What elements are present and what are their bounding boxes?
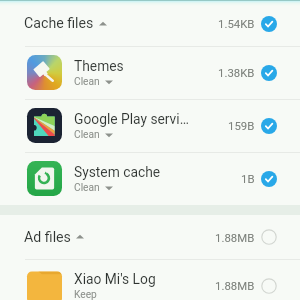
staticText: 1.54KB xyxy=(218,17,255,30)
staticText: System cache xyxy=(74,164,161,180)
staticText: Cache files xyxy=(24,15,94,32)
staticText: Clean xyxy=(74,182,100,194)
button[interactable]: Selected xyxy=(261,16,277,32)
button[interactable]: Ad files xyxy=(0,215,300,259)
staticText: Ad files xyxy=(24,229,71,246)
button[interactable]: System cache xyxy=(0,152,300,205)
staticText: Google Play servi… xyxy=(74,111,189,127)
button[interactable]: Selected xyxy=(261,118,277,134)
staticText: 1.88MB xyxy=(215,279,255,292)
staticText: Clean xyxy=(74,129,100,141)
button[interactable]: Cache files xyxy=(0,1,300,46)
staticText: Clean xyxy=(74,76,100,88)
button[interactable]: Not selected xyxy=(261,229,277,245)
button[interactable]: Xiao Mi's Log xyxy=(0,259,300,300)
staticText: Themes xyxy=(74,58,124,74)
staticText: 1B xyxy=(241,172,255,185)
button[interactable]: Themes xyxy=(0,46,300,99)
staticText: 1.38KB xyxy=(218,66,255,79)
staticText: Keep xyxy=(74,289,97,300)
staticText: Xiao Mi's Log xyxy=(74,271,156,287)
button[interactable]: Selected xyxy=(261,171,277,187)
button[interactable]: Selected xyxy=(261,65,277,81)
button[interactable]: Not selected xyxy=(261,278,277,294)
staticText: 159B xyxy=(228,119,255,132)
staticText: 1.88MB xyxy=(215,231,255,244)
button[interactable]: Google Play servi… xyxy=(0,99,300,152)
